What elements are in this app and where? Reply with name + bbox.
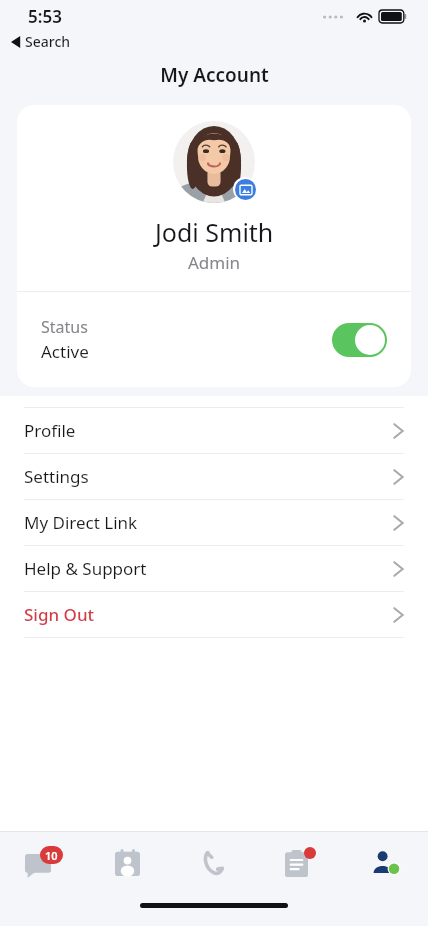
staticText: My Direct Link <box>24 511 393 534</box>
staticText: Admin <box>188 251 241 274</box>
staticText: Jodi Smith <box>155 215 274 249</box>
button[interactable]: Help & Support <box>0 546 428 591</box>
staticText: Search <box>25 32 71 51</box>
staticText: Help & Support <box>24 557 393 580</box>
button[interactable]: Contacts <box>85 832 170 892</box>
staticText: My Account <box>160 62 269 88</box>
button[interactable]: Settings <box>0 454 428 499</box>
button[interactable]: Profile <box>0 408 428 453</box>
button[interactable]: Calls <box>170 832 256 892</box>
staticText: 10 <box>45 848 58 863</box>
staticText: Sign Out <box>24 603 393 626</box>
staticText: Active <box>41 340 89 363</box>
button[interactable]: Tasks <box>256 832 342 892</box>
staticText: Settings <box>24 465 393 488</box>
button[interactable]: My Direct Link <box>0 500 428 545</box>
button[interactable]: Status <box>17 292 411 387</box>
button[interactable]: Status toggle, on <box>332 323 387 357</box>
button[interactable]: Account <box>342 832 428 892</box>
button[interactable]: Change photo <box>235 179 256 200</box>
staticText: Status <box>41 316 88 338</box>
staticText: Profile <box>24 419 393 442</box>
button[interactable]: Messages <box>0 832 85 892</box>
staticText: 5:53 <box>28 5 62 28</box>
button[interactable]: Sign Out <box>0 592 428 637</box>
button[interactable]: Search <box>11 32 71 51</box>
